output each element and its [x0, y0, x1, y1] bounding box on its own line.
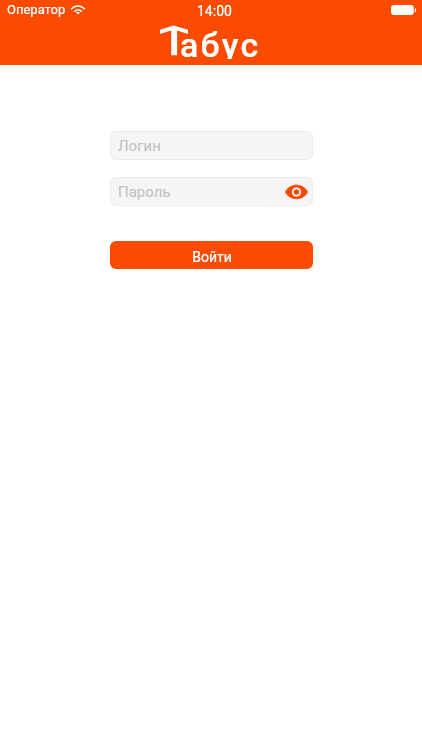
staticText: Пароль — [118, 183, 171, 201]
button[interactable]: Логин — [110, 131, 313, 160]
button[interactable]: Пароль — [110, 177, 313, 206]
staticText: Оператор — [7, 2, 66, 17]
staticText: Логин — [118, 137, 161, 155]
button[interactable]: Показать пароль — [284, 180, 308, 204]
staticText: абус — [180, 25, 261, 59]
staticText: Войти — [192, 249, 232, 265]
button[interactable]: Войти — [110, 241, 313, 269]
staticText: 14:00 — [197, 3, 232, 19]
